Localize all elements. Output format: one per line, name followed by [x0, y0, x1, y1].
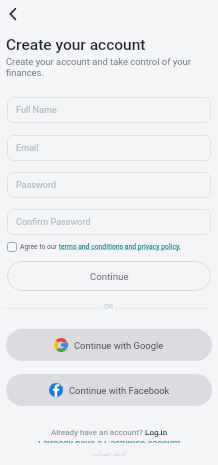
button[interactable]: Confirm Password: [7, 209, 211, 235]
button[interactable]: I already have a CashWise account: [38, 441, 181, 443]
staticText: OR: [104, 303, 114, 311]
staticText: Already have an account?: [51, 427, 145, 436]
button[interactable]: Continue with Facebook: [6, 374, 212, 406]
staticText: Agree to our terms and conditions and pr…: [20, 243, 181, 251]
button[interactable]: Full Name: [7, 97, 211, 123]
staticText: Create your account: [6, 36, 146, 54]
staticText: Continue with Google: [74, 340, 164, 351]
staticText: Create your account and take control of …: [6, 56, 201, 78]
staticText: لديك حساب: [93, 450, 126, 458]
button[interactable]: Continue: [7, 261, 211, 291]
staticText: Full Name: [16, 105, 57, 116]
staticText: Continue with Facebook: [69, 385, 170, 396]
button[interactable]: Agree to our terms and conditions and pr…: [7, 242, 181, 252]
button[interactable]: Password: [7, 172, 211, 198]
button[interactable]: Continue with Google: [6, 329, 212, 361]
button[interactable]: Log in: [145, 427, 168, 436]
button[interactable]: Back: [0, 1, 26, 27]
staticText: Confirm Password: [16, 217, 91, 228]
staticText: Continue: [90, 271, 129, 282]
staticText: Email: [16, 143, 39, 154]
staticText: Password: [16, 180, 57, 191]
button[interactable]: Email: [7, 135, 211, 161]
